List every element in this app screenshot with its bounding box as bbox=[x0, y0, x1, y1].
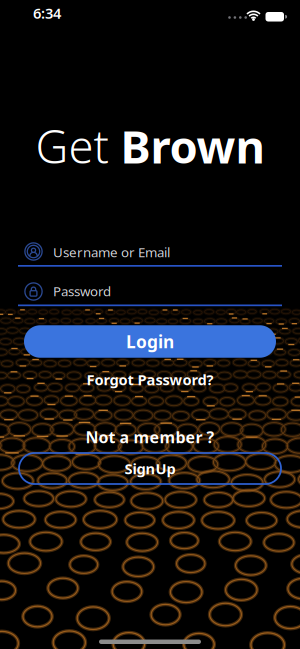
staticText: Forgot Password? bbox=[86, 370, 213, 389]
button[interactable]: Username or Email bbox=[18, 237, 282, 269]
staticText: SignUp bbox=[124, 459, 175, 478]
button[interactable]: Password bbox=[18, 276, 282, 308]
button[interactable]: SignUp bbox=[19, 453, 281, 484]
staticText: Login bbox=[126, 330, 174, 353]
staticText: 6:34 bbox=[33, 3, 61, 23]
staticText: Password bbox=[53, 282, 111, 300]
staticText: Not a member ? bbox=[85, 426, 214, 448]
staticText: Get Brown bbox=[35, 116, 264, 176]
staticText: Username or Email bbox=[53, 243, 170, 261]
button[interactable]: Login bbox=[24, 325, 276, 358]
button[interactable]: Forgot Password? bbox=[86, 370, 213, 389]
